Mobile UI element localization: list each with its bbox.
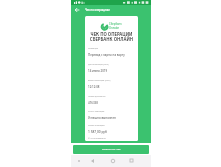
staticText: Чек по операциям (85, 8, 110, 12)
staticText: 12:12:08 (88, 85, 100, 89)
staticText: Успешно выполнен (88, 116, 116, 120)
staticText: Дата операции (МСК) (88, 63, 109, 66)
staticText: Статус операции (88, 110, 105, 113)
staticText: Операция (88, 47, 98, 50)
button[interactable]: Назад (88, 156, 97, 165)
staticText: СОХРАНИТЬ ЧЕК (102, 148, 121, 151)
staticText: СБЕРБАНК ОНЛАЙН (85, 36, 138, 42)
staticText: Сумма операции (88, 124, 105, 127)
staticText: 1 587,00 руб (88, 130, 107, 134)
staticText: ФИО отправителя (88, 137, 106, 140)
staticText: Онлайн (109, 26, 120, 30)
button[interactable]: Назад (72, 5, 82, 14)
button[interactable]: Домой (108, 156, 117, 165)
button[interactable]: Скрыть клавиатуру (74, 156, 83, 165)
button[interactable]: СОХРАНИТЬ ЧЕК (73, 145, 149, 154)
staticText: Сбербанк (109, 22, 122, 26)
button[interactable]: Обзор (127, 156, 136, 165)
staticText: 14 июня 2019 (88, 69, 108, 73)
staticText: Номер документа (88, 95, 106, 98)
staticText: 416338 (88, 101, 98, 105)
staticText: ЧЕК ПО ОПЕРАЦИИ (85, 31, 138, 37)
staticText: Перевод с карты на карту (88, 53, 125, 57)
staticText: Время операции (МСК) (88, 79, 111, 82)
